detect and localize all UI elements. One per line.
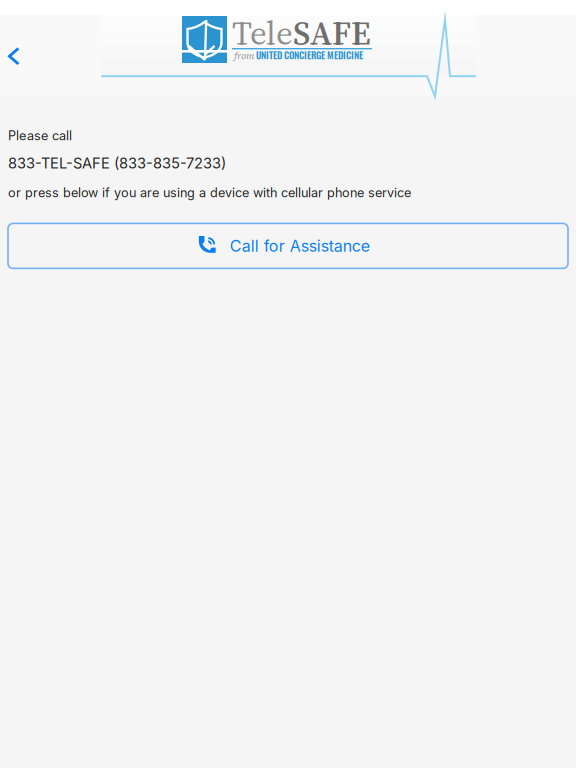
staticText: from [234,50,254,62]
button[interactable]: Back [0,34,36,78]
staticText: 833-TEL-SAFE (833-835-7233) [8,154,226,172]
staticText: Call for Assistance [230,236,370,256]
staticText: Please call [8,128,72,143]
button[interactable]: Call for Assistance [8,223,568,268]
staticText: Tele [232,10,293,56]
staticText: SAFE [293,10,371,56]
staticText: or press below if you are using a device… [8,185,411,200]
staticText: UNITED CONCIERGE MEDICINE [256,48,363,62]
